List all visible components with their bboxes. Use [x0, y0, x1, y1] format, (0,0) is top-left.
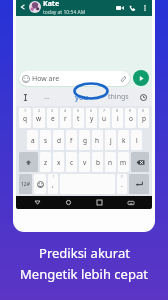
button[interactable]: Home	[63, 197, 74, 208]
button[interactable]: Backspace	[131, 152, 149, 172]
button[interactable]: you	[63, 88, 100, 106]
staticText: Kate	[43, 0, 60, 9]
staticText: 2	[38, 108, 41, 113]
button[interactable]: 5	[73, 108, 84, 128]
staticText: 9	[129, 108, 132, 113]
button[interactable]: l	[131, 130, 142, 150]
button[interactable]: 9	[125, 108, 136, 128]
staticText: Prediksi akurat	[39, 244, 130, 262]
button[interactable]: h	[92, 130, 103, 150]
button[interactable]: Send	[133, 70, 149, 86]
button[interactable]: d	[53, 130, 64, 150]
staticText: 12#	[21, 181, 30, 188]
staticText: l	[136, 136, 138, 145]
button[interactable]: How are	[19, 71, 130, 86]
button[interactable]: Shift	[19, 152, 38, 172]
staticText: t	[77, 114, 80, 123]
staticText: n	[108, 158, 113, 167]
button[interactable]: c	[66, 152, 77, 172]
button[interactable]: Back	[18, 2, 28, 12]
button[interactable]: 1	[19, 108, 31, 128]
button[interactable]: Back	[32, 197, 43, 208]
staticText: c	[70, 158, 74, 167]
staticText: f	[70, 136, 73, 145]
button[interactable]: x	[53, 152, 64, 172]
button[interactable]: 7	[99, 108, 110, 128]
staticText: 6	[90, 108, 93, 113]
staticText: 7	[103, 108, 106, 113]
staticText: k	[122, 136, 126, 145]
button[interactable]: n	[105, 152, 116, 172]
button[interactable]: s	[40, 130, 51, 150]
staticText: b	[96, 158, 100, 167]
staticText: r	[64, 114, 67, 123]
button[interactable]: j	[105, 130, 116, 150]
button[interactable]: Call	[126, 1, 139, 14]
staticText: 4	[64, 108, 67, 113]
button[interactable]: z	[40, 152, 51, 172]
button[interactable]: Kate	[43, 0, 113, 16]
button[interactable]: things	[100, 88, 137, 106]
staticText: ?	[121, 174, 123, 179]
staticText: g	[83, 136, 87, 145]
button[interactable]: More options	[139, 2, 150, 13]
button[interactable]: 8	[112, 108, 123, 128]
staticText: y	[90, 114, 94, 123]
staticText: ...	[44, 92, 50, 102]
staticText: s	[44, 136, 48, 145]
staticText: ,	[52, 180, 54, 189]
staticText: a	[31, 136, 35, 145]
button[interactable]: Video call	[113, 1, 126, 14]
button[interactable]: Enter	[129, 174, 149, 194]
staticText: p	[142, 114, 146, 123]
staticText: 0	[142, 108, 145, 113]
staticText: .	[121, 180, 123, 189]
button[interactable]: 6	[86, 108, 97, 128]
button[interactable]: Text edit	[19, 91, 31, 103]
button[interactable]: Symbols	[19, 174, 32, 194]
button[interactable]: g	[79, 130, 90, 150]
button[interactable]: 4	[60, 108, 71, 128]
button[interactable]: k	[118, 130, 129, 150]
button[interactable]: 2	[33, 108, 45, 128]
button[interactable]: 3	[47, 108, 58, 128]
button[interactable]: .	[117, 174, 127, 194]
button[interactable]: m	[118, 152, 129, 172]
staticText: h	[95, 136, 100, 145]
staticText: 3	[51, 108, 54, 113]
button[interactable]: Keyboard	[125, 197, 136, 208]
button[interactable]: Emoji	[34, 174, 46, 194]
staticText: q	[23, 114, 27, 123]
staticText: o	[129, 114, 133, 123]
staticText: x	[57, 158, 61, 167]
staticText: !	[53, 174, 54, 179]
button[interactable]: ,	[48, 174, 58, 194]
staticText: 5	[77, 108, 80, 113]
button[interactable]: v	[79, 152, 90, 172]
button[interactable]: 0	[138, 108, 149, 128]
button[interactable]: a	[27, 130, 38, 150]
staticText: 8	[116, 108, 119, 113]
staticText: z	[44, 158, 48, 167]
staticText: j	[110, 136, 112, 145]
staticText: you	[75, 92, 89, 102]
staticText: u	[102, 114, 107, 123]
staticText: today at 10:54 AM	[43, 9, 86, 16]
staticText: Mengetik lebih cepat	[20, 265, 148, 283]
button[interactable]: b	[92, 152, 103, 172]
button[interactable]: Recent	[137, 91, 149, 103]
staticText: i	[117, 114, 119, 123]
staticText: d	[57, 136, 61, 145]
staticText: w	[36, 114, 42, 123]
staticText: things	[108, 92, 129, 102]
staticText: e	[51, 114, 55, 123]
staticText: v	[83, 158, 87, 167]
staticText: How are	[32, 74, 60, 84]
button[interactable]: Recents	[94, 197, 105, 208]
staticText: 1	[24, 108, 27, 113]
staticText: m	[120, 158, 127, 167]
button[interactable]: f	[66, 130, 77, 150]
